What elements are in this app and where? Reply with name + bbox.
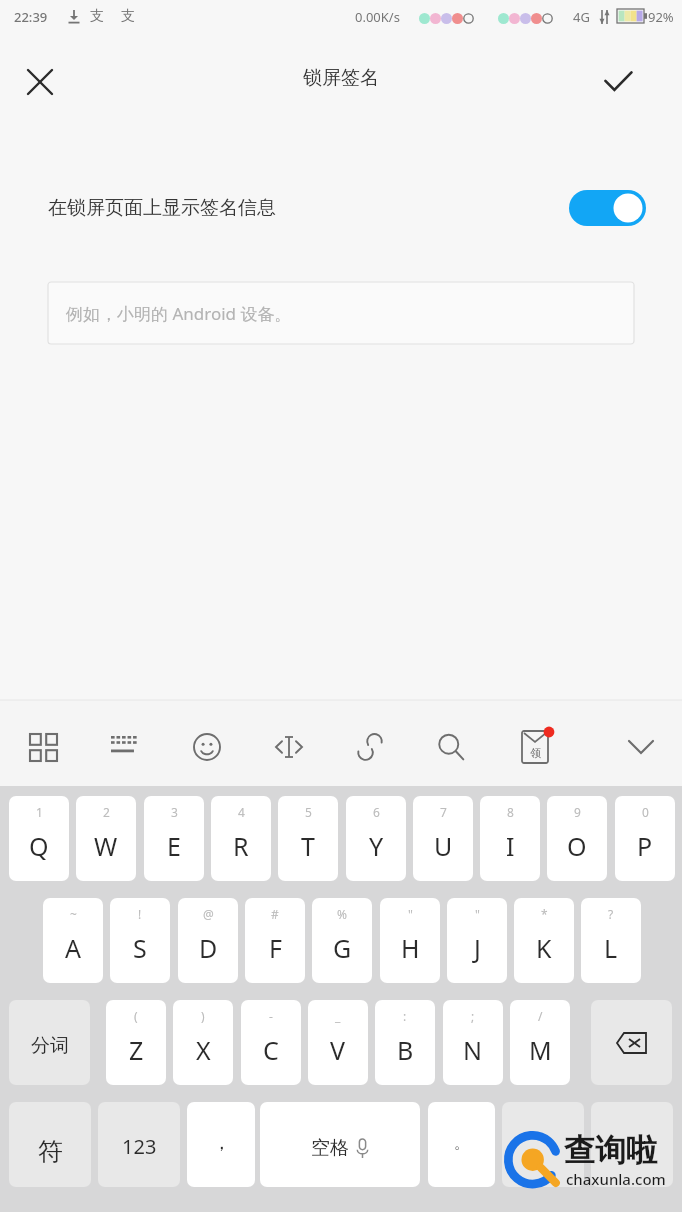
staticText: 5	[305, 804, 312, 820]
staticText: 例如，小明的 Android 设备。	[66, 302, 292, 325]
staticText: 领	[530, 746, 541, 760]
button[interactable]: Confirm	[594, 58, 642, 106]
button[interactable]: ~	[43, 898, 103, 983]
button[interactable]: _	[308, 1000, 368, 1085]
button[interactable]: Emoji	[178, 718, 236, 776]
button[interactable]: %	[312, 898, 372, 983]
staticText: W	[94, 829, 118, 863]
button[interactable]: 分词	[9, 1000, 90, 1085]
staticText: O	[567, 829, 587, 863]
staticText: _	[335, 1008, 341, 1024]
staticText: S	[133, 931, 147, 965]
staticText: "	[475, 906, 480, 922]
staticText: 锁屏签名	[0, 66, 682, 90]
button[interactable]: Key	[502, 1102, 584, 1187]
staticText: F	[269, 931, 282, 965]
button[interactable]: "	[447, 898, 507, 983]
staticText: E	[167, 829, 181, 863]
button[interactable]: ?	[581, 898, 641, 983]
button[interactable]: Collapse keyboard	[612, 718, 670, 776]
staticText: 查询啦	[564, 1131, 657, 1170]
staticText: J	[474, 931, 481, 965]
button[interactable]: (	[106, 1000, 166, 1085]
staticText: !	[138, 906, 142, 922]
staticText: ?	[608, 906, 614, 922]
staticText: I	[506, 829, 515, 863]
button[interactable]: 。	[428, 1102, 495, 1187]
staticText: B	[397, 1033, 414, 1067]
staticText: L	[604, 931, 618, 965]
button[interactable]: 1	[9, 796, 69, 881]
staticText: 123	[122, 1133, 157, 1160]
button[interactable]: -	[241, 1000, 301, 1085]
staticText: 空格	[311, 1136, 349, 1160]
button[interactable]: 0	[615, 796, 675, 881]
staticText: 9	[574, 804, 581, 820]
button[interactable]: *	[514, 898, 574, 983]
button[interactable]: 符	[9, 1102, 91, 1187]
staticText: /	[538, 1008, 543, 1024]
staticText: N	[463, 1033, 483, 1067]
button[interactable]: Grid	[14, 718, 72, 776]
button[interactable]: 9	[547, 796, 607, 881]
staticText: ;	[471, 1008, 475, 1024]
staticText: 1	[36, 804, 43, 820]
button[interactable]: 在锁屏页面上显示签名信息	[0, 168, 682, 248]
staticText: 0	[642, 804, 649, 820]
staticText: Q	[29, 829, 49, 863]
button[interactable]: 123	[98, 1102, 180, 1187]
button[interactable]: 4	[211, 796, 271, 881]
staticText: *	[541, 906, 548, 922]
staticText: 分词	[31, 1034, 69, 1058]
button[interactable]: Search	[422, 718, 480, 776]
staticText: C	[263, 1033, 279, 1067]
staticText: M	[529, 1033, 552, 1067]
button[interactable]: "	[380, 898, 440, 983]
button[interactable]: 3	[144, 796, 204, 881]
button[interactable]: @	[178, 898, 238, 983]
staticText: 6	[373, 804, 380, 820]
button[interactable]: #	[245, 898, 305, 983]
staticText: R	[233, 829, 249, 863]
button[interactable]: 例如，小明的 Android 设备。	[48, 282, 634, 344]
button[interactable]: 5	[278, 796, 338, 881]
staticText: "	[408, 906, 413, 922]
staticText: D	[199, 931, 218, 965]
staticText: @	[203, 906, 214, 922]
button[interactable]: Key	[591, 1102, 673, 1187]
staticText: Z	[129, 1033, 144, 1067]
staticText: 8	[507, 804, 514, 820]
button[interactable]: )	[173, 1000, 233, 1085]
button[interactable]: Close	[16, 58, 64, 106]
staticText: #	[271, 906, 279, 922]
staticText: 2	[103, 804, 110, 820]
button[interactable]: Backspace	[591, 1000, 672, 1085]
staticText: :	[403, 1008, 407, 1024]
button[interactable]: /	[510, 1000, 570, 1085]
staticText: V	[330, 1033, 346, 1067]
button[interactable]: 7	[413, 796, 473, 881]
staticText: )	[201, 1008, 205, 1024]
staticText: T	[301, 829, 315, 863]
staticText: chaxunla.com	[566, 1169, 666, 1189]
button[interactable]: ，	[187, 1102, 255, 1187]
button[interactable]: 2	[76, 796, 136, 881]
button[interactable]: ;	[443, 1000, 503, 1085]
staticText: U	[434, 829, 453, 863]
button[interactable]: 8	[480, 796, 540, 881]
staticText: 7	[440, 804, 447, 820]
staticText: (	[134, 1008, 138, 1024]
button[interactable]: 空格	[260, 1102, 420, 1187]
staticText: 92%	[648, 8, 674, 26]
staticText: 4G	[573, 8, 590, 26]
staticText: K	[536, 931, 552, 965]
button[interactable]: Cursor	[260, 718, 318, 776]
button[interactable]: Keyboard	[96, 718, 154, 776]
button[interactable]: 6	[346, 796, 406, 881]
button[interactable]: Red packet	[506, 718, 564, 776]
button[interactable]: !	[110, 898, 170, 983]
button[interactable]: :	[375, 1000, 435, 1085]
staticText: Y	[369, 829, 384, 863]
staticText: 。	[454, 1134, 469, 1153]
button[interactable]: Clip	[341, 718, 399, 776]
